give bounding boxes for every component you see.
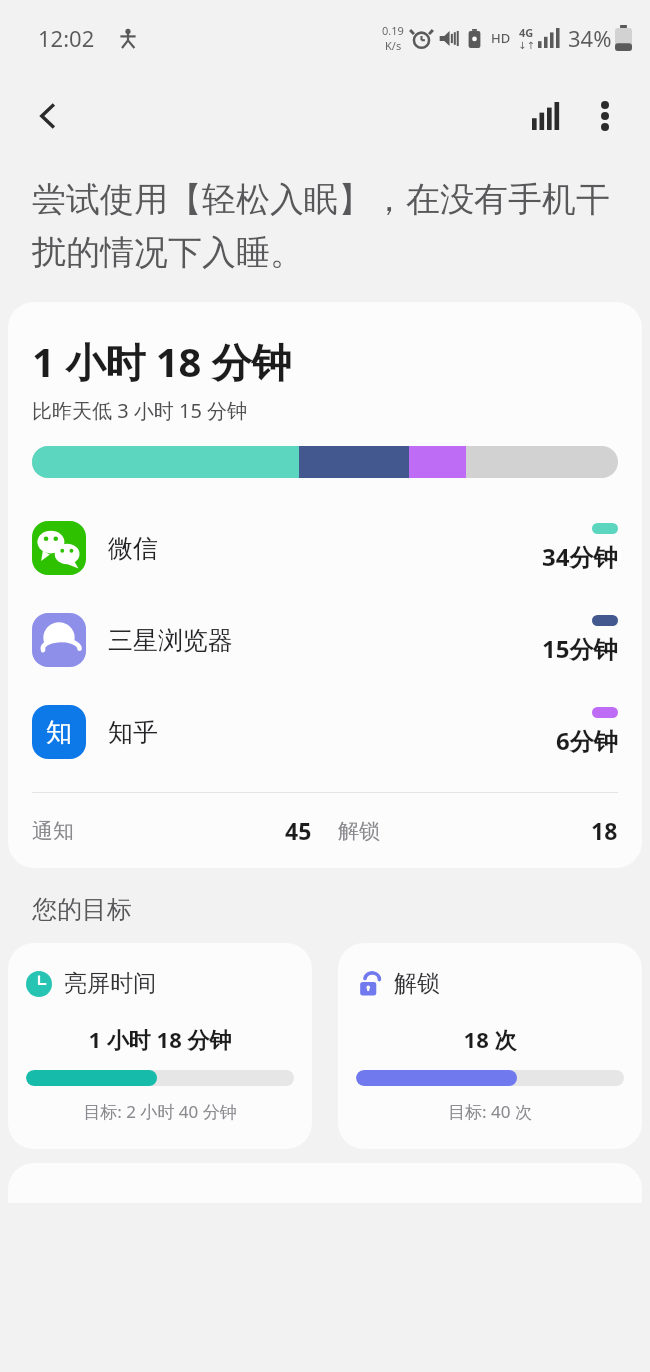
staticText: 34分钟 <box>542 540 618 573</box>
staticText: 0.19 <box>382 23 404 38</box>
staticText: 亮屏时间 <box>64 969 156 998</box>
staticText: 45 <box>285 815 312 846</box>
staticText: 知 <box>46 716 72 749</box>
button[interactable]: Usage statistics <box>518 87 576 145</box>
button[interactable]: 亮屏时间 <box>8 943 312 1149</box>
button[interactable]: More options <box>576 87 634 145</box>
staticText: 微信 <box>108 533 158 564</box>
button[interactable]: 解锁 <box>338 815 618 846</box>
staticText: 6分钟 <box>556 724 618 757</box>
staticText: ↓↑ <box>518 40 535 52</box>
button[interactable]: 通知 <box>32 815 312 846</box>
staticText: 18 <box>591 815 618 846</box>
staticText: 15分钟 <box>542 632 618 665</box>
staticText: HD <box>491 29 511 47</box>
staticText: 1 小时 18 分钟 <box>32 334 292 389</box>
staticText: 您的目标 <box>32 894 132 925</box>
button[interactable]: 1 小时 18 分钟 <box>8 302 642 868</box>
staticText: 比昨天低 3 小时 15 分钟 <box>32 397 248 424</box>
staticText: 知乎 <box>108 717 158 748</box>
staticText: 尝试使用【轻松入眠】，在没有手机干扰的情况下入睡。 <box>32 178 610 274</box>
staticText: 三星浏览器 <box>108 625 233 656</box>
staticText: 解锁 <box>338 818 380 844</box>
button[interactable]: 知 <box>8 686 642 778</box>
staticText: K/s <box>385 38 402 53</box>
staticText: 解锁 <box>394 969 440 998</box>
button[interactable]: 三星浏览器 <box>8 594 642 686</box>
staticText: 34% <box>568 23 612 53</box>
staticText: 目标: 40 次 <box>356 1100 624 1123</box>
staticText: 18 次 <box>356 1024 624 1054</box>
staticText: 目标: 2 小时 40 分钟 <box>26 1100 294 1123</box>
button[interactable]: 微信 <box>8 502 642 594</box>
button[interactable]: 解锁 <box>338 943 642 1149</box>
staticText: 12:02 <box>38 23 95 53</box>
staticText: 1 小时 18 分钟 <box>26 1024 294 1054</box>
button[interactable]: Back <box>20 88 76 144</box>
staticText: 通知 <box>32 818 74 844</box>
staticText: 4G <box>519 25 534 40</box>
